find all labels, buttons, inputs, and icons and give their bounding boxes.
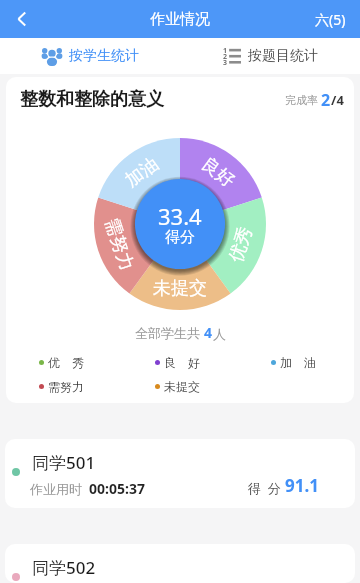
- staticText: 3: [223, 58, 228, 68]
- staticText: 按题目统计: [248, 47, 318, 65]
- button[interactable]: 按学生统计: [0, 38, 180, 74]
- button[interactable]: 良 好: [155, 354, 200, 370]
- staticText: 未提交: [153, 277, 207, 300]
- staticText: 完成率: [285, 92, 321, 107]
- staticText: 优秀: [224, 224, 257, 265]
- staticText: 同学501: [32, 451, 96, 474]
- staticText: 需努力: [100, 215, 138, 274]
- button[interactable]: 未提交: [155, 378, 200, 394]
- staticText: 未提交: [164, 379, 200, 394]
- staticText: 4: [204, 323, 213, 342]
- staticText: 六(5): [315, 10, 346, 29]
- staticText: 加 油: [280, 354, 316, 370]
- staticText: 需努力: [48, 379, 84, 394]
- button[interactable]: 需努力: [39, 378, 84, 394]
- staticText: 优 秀: [48, 354, 84, 370]
- staticText: 良 好: [164, 354, 200, 370]
- button[interactable]: 同学501: [5, 439, 355, 508]
- staticText: 1: [223, 46, 228, 56]
- button[interactable]: 优 秀: [39, 354, 84, 370]
- staticText: 同学502: [32, 556, 96, 579]
- staticText: 得分: [165, 228, 195, 247]
- staticText: 加油: [121, 153, 163, 192]
- staticText: 33.4: [158, 201, 202, 231]
- staticText: /4: [331, 91, 344, 109]
- button[interactable]: 加 油: [271, 354, 316, 370]
- staticText: 91.1: [285, 474, 319, 497]
- staticText: 良好: [197, 153, 239, 192]
- staticText: 全部学生共: [135, 324, 204, 342]
- staticText: 2: [223, 52, 228, 62]
- button[interactable]: 1: [180, 38, 360, 74]
- staticText: 作业用时: [30, 480, 89, 498]
- staticText: 按学生统计: [69, 47, 139, 65]
- staticText: 得 分: [248, 479, 285, 497]
- button[interactable]: 同学502: [5, 544, 355, 583]
- staticText: 人: [213, 326, 226, 342]
- staticText: 00:05:37: [89, 479, 145, 498]
- staticText: 整数和整除的意义: [20, 88, 164, 111]
- staticText: 作业情况: [150, 10, 210, 29]
- staticText: 2: [321, 89, 331, 111]
- button[interactable]: Back: [0, 0, 44, 38]
